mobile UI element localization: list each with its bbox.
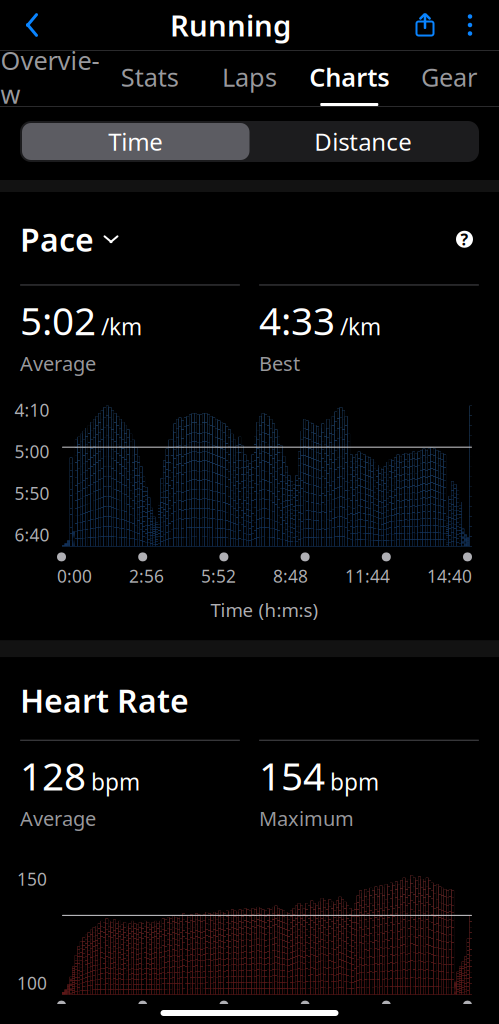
- button[interactable]: More options: [445, 3, 499, 47]
- staticText: Overview: [0, 43, 99, 111]
- staticText: Best: [259, 350, 300, 376]
- button[interactable]: Distance: [249, 123, 477, 160]
- staticText: 5:52: [201, 564, 236, 587]
- staticText: Gear: [421, 60, 477, 94]
- staticText: bpm: [330, 766, 379, 797]
- button[interactable]: Time: [22, 123, 249, 160]
- staticText: 5:00: [14, 440, 49, 463]
- staticText: 128: [20, 750, 86, 801]
- staticText: Stats: [121, 60, 179, 94]
- staticText: 5:02: [20, 294, 96, 346]
- staticText: /km: [340, 311, 381, 341]
- staticText: Average: [20, 805, 96, 832]
- staticText: 11:44: [345, 564, 390, 587]
- staticText: 4:33: [259, 294, 335, 346]
- staticText: bpm: [91, 766, 140, 797]
- staticText: /km: [101, 311, 142, 341]
- button[interactable]: Share: [405, 2, 445, 48]
- staticText: 154: [259, 750, 325, 801]
- staticText: 5:50: [14, 482, 49, 505]
- staticText: 2:56: [129, 1013, 164, 1024]
- button[interactable]: Overview: [0, 51, 100, 106]
- staticText: Charts: [309, 60, 389, 94]
- staticText: 2:56: [129, 564, 164, 587]
- staticText: ?: [460, 229, 468, 250]
- staticText: 14:40: [427, 564, 472, 587]
- staticText: Time (h:m:s): [210, 597, 318, 622]
- staticText: 150: [17, 868, 47, 891]
- staticText: 5:52: [201, 1013, 236, 1024]
- staticText: Time: [108, 126, 163, 157]
- button[interactable]: Charts: [299, 51, 399, 106]
- staticText: 8:48: [273, 564, 308, 587]
- staticText: Pace: [20, 218, 94, 260]
- button[interactable]: Gear: [399, 51, 499, 106]
- staticText: 6:40: [14, 523, 49, 546]
- button[interactable]: Pace: [20, 212, 120, 266]
- staticText: 8:48: [273, 1013, 308, 1024]
- staticText: Laps: [222, 60, 277, 94]
- staticText: 100: [17, 972, 47, 995]
- staticText: Heart Rate: [20, 679, 189, 722]
- button[interactable]: Back: [0, 1, 56, 49]
- staticText: Running: [170, 5, 291, 44]
- staticText: 4:10: [14, 398, 49, 421]
- staticText: Distance: [314, 126, 412, 157]
- button[interactable]: Laps: [200, 51, 299, 106]
- staticText: Average: [20, 350, 96, 376]
- staticText: Maximum: [259, 805, 354, 832]
- staticText: 0:00: [57, 564, 92, 587]
- button[interactable]: Help: [450, 225, 479, 254]
- button[interactable]: Stats: [100, 51, 200, 106]
